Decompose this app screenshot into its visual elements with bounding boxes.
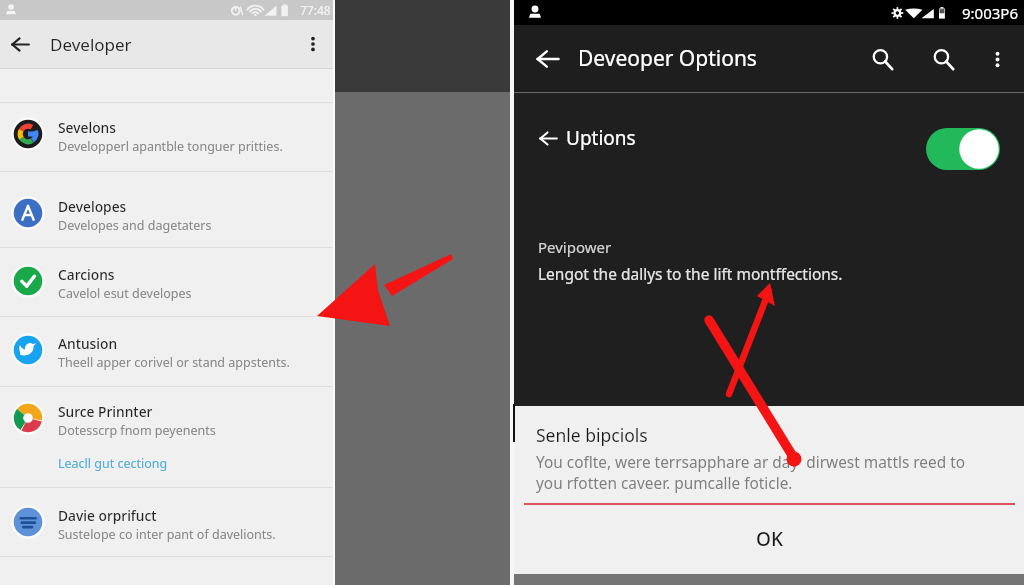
button[interactable]: Antusion (0, 317, 334, 386)
button[interactable]: Toggle developer options (926, 128, 1000, 170)
button[interactable]: More options (292, 23, 334, 65)
button[interactable]: Leacll gut cectiong (58, 455, 168, 472)
staticText: Uptions (566, 125, 636, 151)
staticText: Davie orprifuct (58, 506, 157, 525)
staticText: 9:003P6 (962, 3, 1018, 23)
button[interactable]: Search (858, 35, 906, 83)
staticText: Carcions (58, 265, 115, 284)
staticText: Developer (50, 33, 132, 56)
staticText: Senle bipciols (536, 423, 648, 447)
staticText: Dotesscrp fnom peyenents (58, 422, 216, 439)
staticText: Pevipower (538, 237, 612, 257)
staticText: Lengot the dallys to the lift montffecti… (538, 263, 843, 284)
button[interactable]: Surce Prinnter (0, 387, 334, 487)
staticText: Surce Prinnter (58, 402, 153, 421)
staticText: 77:48 (300, 2, 331, 18)
button[interactable]: Back (528, 39, 568, 79)
button[interactable]: OK (730, 517, 809, 561)
staticText: Sevelons (58, 118, 116, 137)
staticText: OK (756, 526, 783, 552)
button[interactable]: Uptions (514, 116, 830, 160)
staticText: Deveoper Options (578, 44, 757, 73)
button[interactable]: Carcions (0, 248, 334, 316)
button[interactable]: More options (975, 37, 1019, 81)
staticText: Developes (58, 197, 127, 216)
staticText: Antusion (58, 334, 118, 353)
staticText: Developes and dagetaters (58, 217, 212, 234)
staticText: Sustelope co inter pant of davelionts. (58, 526, 276, 543)
staticText: You coflte, were terrsapphare ar day dir… (536, 452, 966, 493)
button[interactable]: Back (0, 24, 41, 65)
button[interactable]: Voice search (919, 35, 967, 83)
staticText: Theell apper corivel or stand appstents. (58, 354, 290, 371)
button[interactable]: Developes (0, 172, 334, 247)
staticText: Developperl apantble tonguer pritties. (58, 138, 283, 155)
button[interactable]: Davie orprifuct (0, 488, 334, 556)
staticText: Cavelol esut developes (58, 285, 192, 302)
button[interactable]: Sevelons (0, 103, 334, 171)
